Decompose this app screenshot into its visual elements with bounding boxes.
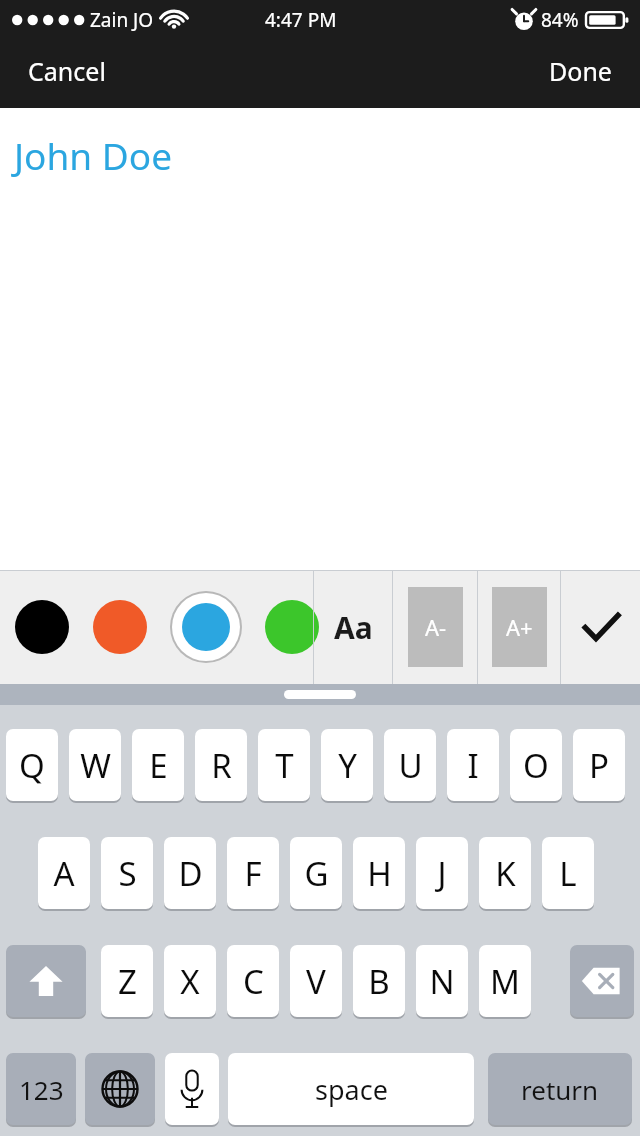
- staticText: C: [243, 959, 264, 1004]
- staticText: A: [53, 851, 75, 896]
- button[interactable]: N: [416, 945, 468, 1017]
- staticText: S: [118, 851, 137, 896]
- button[interactable]: Color: [92, 599, 148, 655]
- staticText: U: [398, 743, 423, 788]
- staticText: X: [180, 959, 200, 1004]
- button[interactable]: Z: [101, 945, 153, 1017]
- button[interactable]: F: [227, 837, 279, 909]
- staticText: Q: [19, 743, 45, 788]
- button[interactable]: Color: [170, 591, 242, 663]
- staticText: 84%: [541, 7, 579, 33]
- button[interactable]: Q: [6, 729, 58, 801]
- button[interactable]: K: [479, 837, 531, 909]
- button[interactable]: Color: [264, 599, 320, 655]
- staticText: 123: [19, 1072, 64, 1107]
- staticText: John Doe: [14, 130, 173, 180]
- button[interactable]: W: [69, 729, 121, 801]
- button[interactable]: A+: [478, 570, 560, 684]
- button[interactable]: Cancel: [0, 42, 134, 100]
- staticText: Zain JO: [90, 7, 154, 33]
- staticText: return: [521, 1072, 599, 1107]
- button[interactable]: C: [227, 945, 279, 1017]
- staticText: Cancel: [28, 54, 106, 88]
- button[interactable]: space: [228, 1053, 474, 1125]
- staticText: Y: [338, 743, 357, 788]
- button[interactable]: Hide keyboard: [284, 690, 356, 699]
- button[interactable]: Y: [321, 729, 373, 801]
- staticText: Z: [118, 959, 137, 1004]
- staticText: R: [211, 743, 232, 788]
- button[interactable]: A-: [393, 570, 477, 684]
- button[interactable]: O: [510, 729, 562, 801]
- staticText: B: [368, 959, 390, 1004]
- button[interactable]: X: [164, 945, 216, 1017]
- button[interactable]: U: [384, 729, 436, 801]
- button[interactable]: M: [479, 945, 531, 1017]
- button[interactable]: L: [542, 837, 594, 909]
- button[interactable]: Dictate: [165, 1053, 219, 1125]
- staticText: W: [80, 743, 111, 788]
- button[interactable]: R: [195, 729, 247, 801]
- button[interactable]: return: [488, 1053, 632, 1125]
- staticText: I: [467, 743, 479, 788]
- staticText: M: [490, 959, 520, 1004]
- staticText: 4:47 PM: [265, 7, 337, 33]
- button[interactable]: G: [290, 837, 342, 909]
- button[interactable]: D: [164, 837, 216, 909]
- staticText: H: [367, 851, 392, 896]
- button[interactable]: Done: [521, 42, 640, 100]
- button[interactable]: Shift: [6, 945, 86, 1017]
- staticText: E: [149, 743, 168, 788]
- button[interactable]: Confirm: [561, 570, 640, 684]
- button[interactable]: T: [258, 729, 310, 801]
- staticText: A+: [506, 612, 533, 642]
- button[interactable]: A: [38, 837, 90, 909]
- button[interactable]: Aa: [314, 570, 392, 684]
- staticText: T: [275, 743, 294, 788]
- staticText: Aa: [334, 607, 373, 648]
- staticText: V: [306, 959, 326, 1004]
- button[interactable]: Switch keyboard: [85, 1053, 155, 1125]
- staticText: J: [437, 851, 447, 896]
- button[interactable]: E: [132, 729, 184, 801]
- staticText: L: [559, 851, 577, 896]
- button[interactable]: Backspace: [570, 945, 634, 1017]
- staticText: space: [315, 1071, 388, 1108]
- staticText: A-: [425, 612, 447, 642]
- staticText: K: [495, 851, 516, 896]
- button[interactable]: V: [290, 945, 342, 1017]
- button[interactable]: 123: [6, 1053, 76, 1125]
- button[interactable]: Color: [14, 599, 70, 655]
- button[interactable]: I: [447, 729, 499, 801]
- button[interactable]: H: [353, 837, 405, 909]
- button[interactable]: S: [101, 837, 153, 909]
- staticText: G: [304, 851, 329, 896]
- staticText: Done: [549, 54, 612, 88]
- staticText: F: [244, 851, 262, 896]
- staticText: O: [523, 743, 549, 788]
- button[interactable]: J: [416, 837, 468, 909]
- staticText: P: [589, 743, 609, 788]
- staticText: N: [429, 959, 455, 1004]
- button[interactable]: P: [573, 729, 625, 801]
- button[interactable]: B: [353, 945, 405, 1017]
- staticText: D: [178, 851, 203, 896]
